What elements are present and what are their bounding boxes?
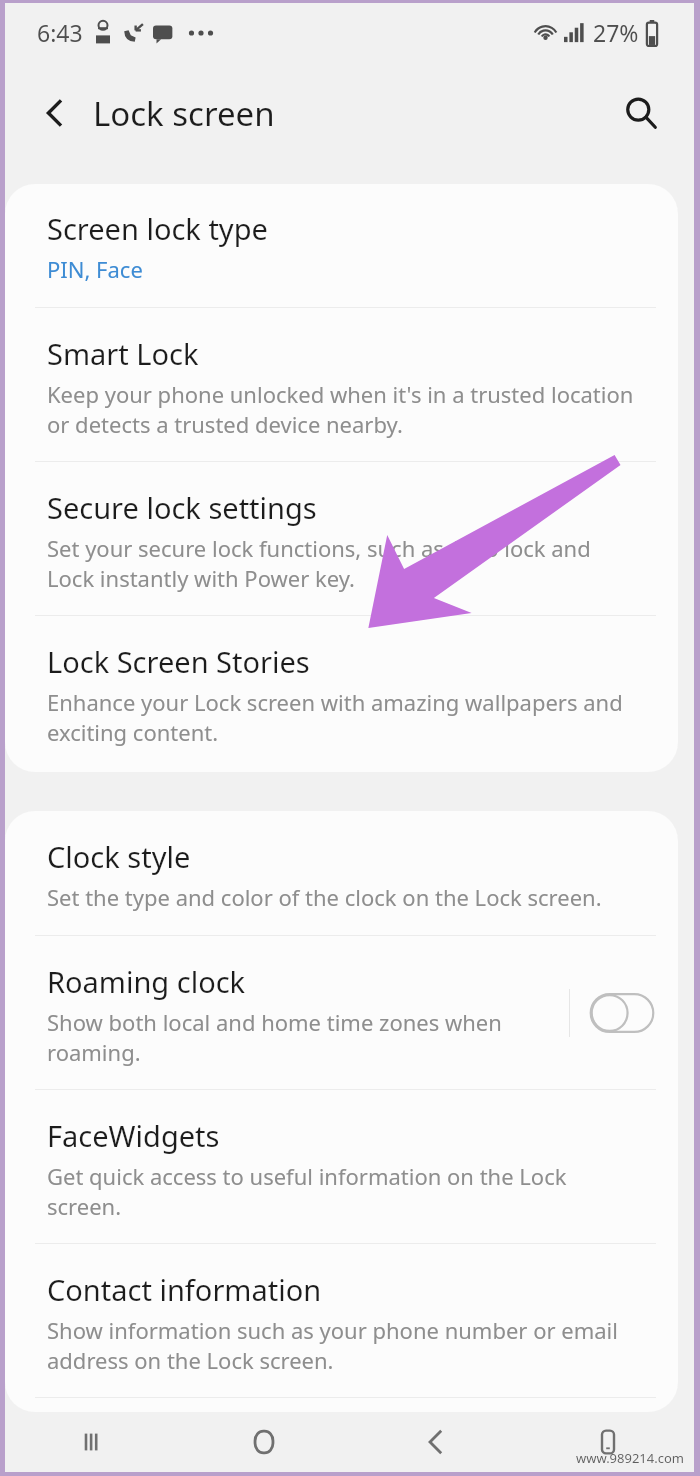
button[interactable]: Home [178,1412,350,1472]
staticText: Keep your phone unlocked when it's in a … [47,379,642,440]
button[interactable]: Clock style [5,811,678,935]
button[interactable]: Screen lock type [5,184,678,307]
button[interactable]: Secure lock settings [5,462,678,615]
button[interactable]: Roaming clock toggle [588,991,656,1035]
button[interactable]: Back [350,1412,522,1472]
staticText: Clock style [47,837,191,876]
staticText: Secure lock settings [47,488,317,527]
staticText: Lock screen [93,91,275,136]
staticText: Screen lock type [47,209,268,248]
button[interactable]: Recents [5,1412,178,1472]
button[interactable]: FaceWidgets [5,1090,678,1243]
staticText: Set your secure lock functions, such as … [47,533,642,594]
button[interactable]: Lock Screen Stories [5,616,678,772]
staticText: Smart Lock [47,334,199,373]
staticText: Show both local and home time zones when… [47,1007,561,1068]
staticText: Get quick access to useful information o… [47,1161,642,1222]
staticText: FaceWidgets [47,1116,220,1155]
staticText: www.989214.com [576,1449,684,1467]
staticText: Contact information [47,1270,322,1309]
staticText: 27% [593,17,639,48]
button[interactable]: Roaming clock [5,936,678,1089]
staticText: Roaming clock [47,962,246,1001]
staticText: PIN, Face [47,254,143,284]
button[interactable]: Search [612,84,670,142]
button[interactable]: Screenshot [522,1412,694,1472]
staticText: 6:43 [37,17,83,48]
button[interactable]: Contact information [5,1244,678,1397]
staticText: Lock Screen Stories [47,642,310,681]
button[interactable]: Back [27,85,83,141]
staticText: Set the type and color of the clock on t… [47,882,602,912]
staticText: Enhance your Lock screen with amazing wa… [47,687,642,748]
staticText: Show information such as your phone numb… [47,1315,642,1376]
button[interactable]: Smart Lock [5,308,678,461]
